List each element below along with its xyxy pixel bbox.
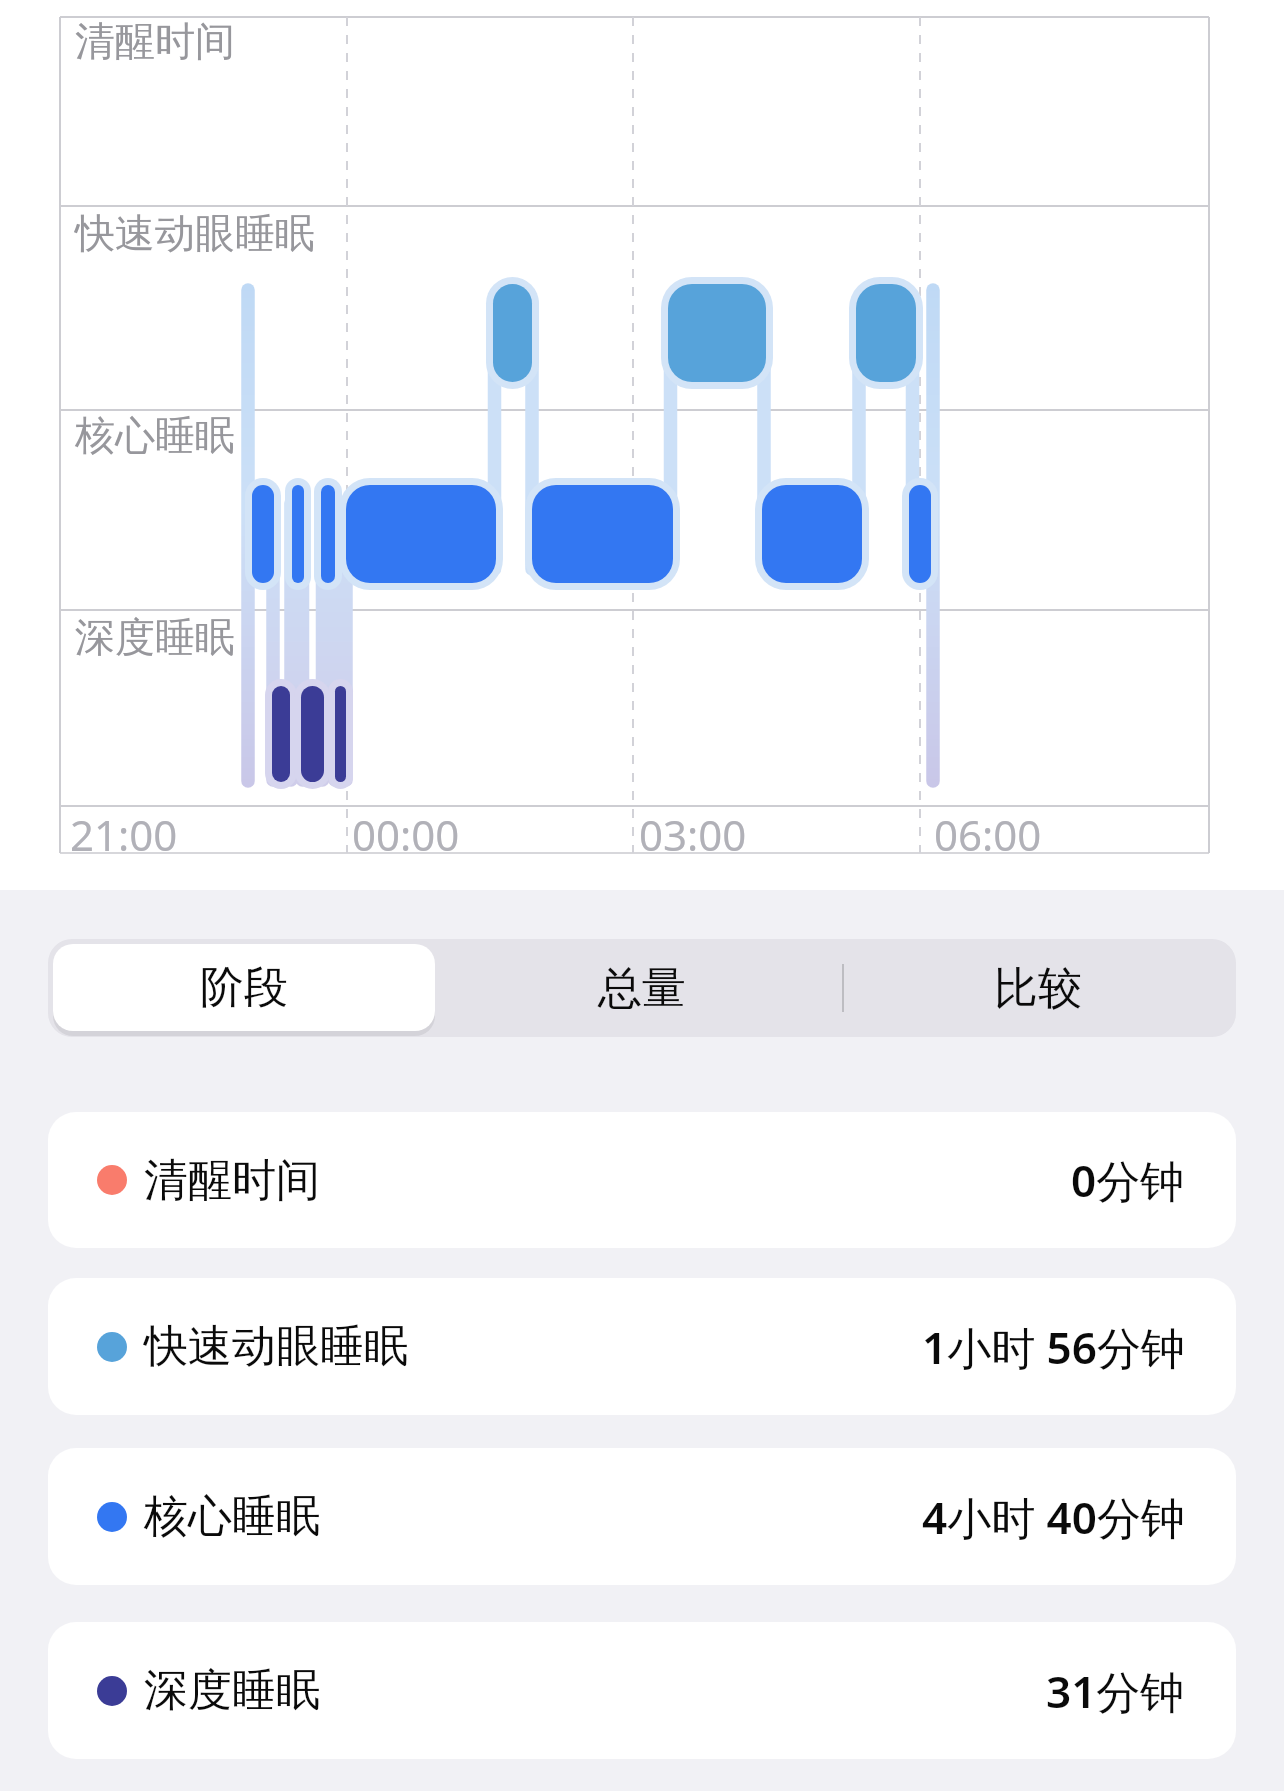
staticText: 31分钟: [1046, 1661, 1185, 1721]
button[interactable]: 核心睡眠: [48, 1448, 1236, 1585]
staticText: 06:00: [934, 806, 1042, 863]
staticText: 4小时 40分钟: [922, 1487, 1185, 1547]
staticText: 快速动眼睡眠: [75, 208, 315, 258]
staticText: 21:00: [70, 806, 178, 863]
staticText: 1小时 56分钟: [922, 1317, 1185, 1377]
staticText: 清醒时间: [75, 16, 235, 66]
button[interactable]: 快速动眼睡眠: [48, 1278, 1236, 1415]
staticText: 阶段: [200, 960, 288, 1015]
staticText: 比较: [994, 961, 1082, 1016]
staticText: 总量: [598, 961, 686, 1016]
staticText: 核心睡眠: [75, 410, 235, 460]
staticText: 核心睡眠: [144, 1489, 320, 1544]
staticText: 00:00: [352, 806, 460, 863]
staticText: 03:00: [639, 806, 747, 863]
button[interactable]: 比较: [840, 939, 1236, 1037]
staticText: 深度睡眠: [144, 1663, 320, 1718]
button[interactable]: 阶段: [53, 944, 435, 1031]
staticText: 深度睡眠: [75, 612, 235, 662]
staticText: 快速动眼睡眠: [144, 1319, 408, 1374]
button[interactable]: 深度睡眠: [48, 1622, 1236, 1759]
button[interactable]: 总量: [444, 939, 840, 1037]
staticText: 0分钟: [1071, 1150, 1185, 1210]
button[interactable]: 清醒时间: [48, 1112, 1236, 1248]
staticText: 清醒时间: [144, 1153, 320, 1208]
